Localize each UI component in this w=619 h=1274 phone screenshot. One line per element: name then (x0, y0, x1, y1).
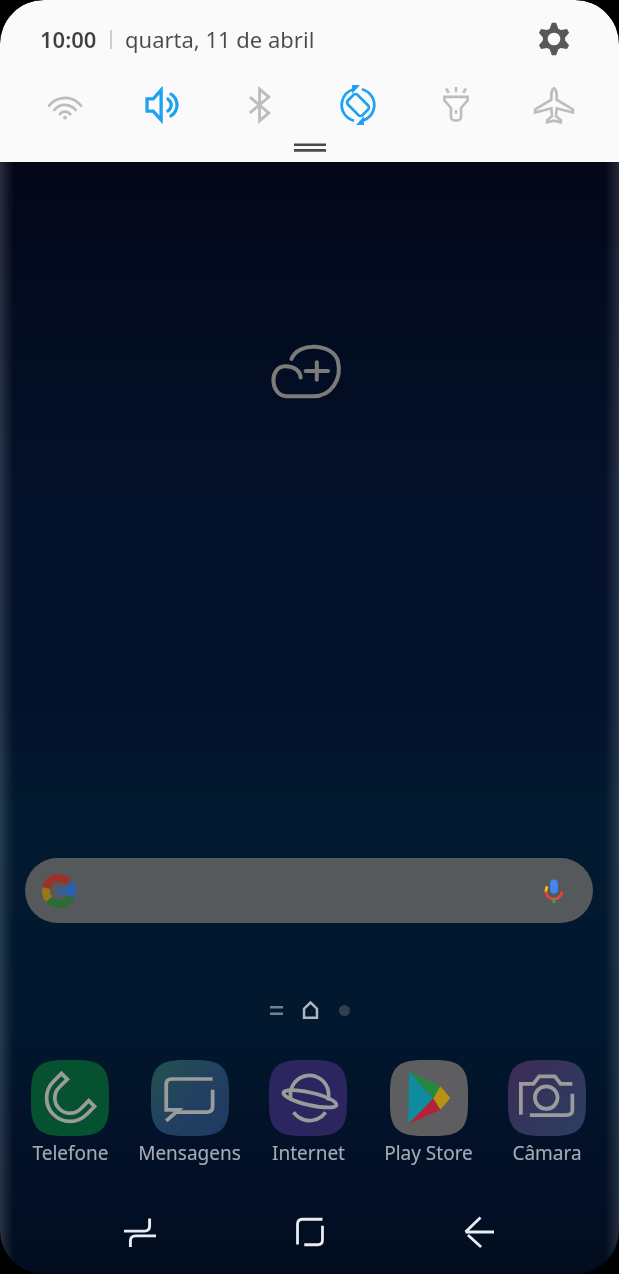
button[interactable]: Back (449, 1202, 509, 1262)
button[interactable]: Home page (298, 998, 322, 1022)
button[interactable]: Mensagens (130, 1054, 248, 1170)
staticText: Telefone (32, 1140, 109, 1166)
button[interactable]: Airplane mode (505, 76, 603, 134)
staticText: 10:00 (40, 24, 97, 54)
button[interactable]: Settings (530, 15, 578, 63)
button[interactable]: Search (25, 858, 593, 923)
button[interactable]: Auto rotate (309, 76, 407, 134)
button[interactable]: Add widget (267, 341, 350, 401)
button[interactable]: Next page (332, 998, 356, 1022)
button[interactable]: Play Store (369, 1054, 487, 1170)
staticText: Câmara (512, 1140, 582, 1166)
button[interactable]: Internet (249, 1054, 367, 1170)
staticText: Play Store (384, 1140, 473, 1166)
button[interactable]: Bluetooth (211, 76, 309, 134)
button[interactable]: Câmara (488, 1054, 606, 1170)
button[interactable]: Flashlight (407, 76, 505, 134)
button[interactable]: Feed page (264, 998, 288, 1022)
button[interactable]: Wi-Fi (16, 76, 113, 134)
staticText: quarta, 11 de abril (125, 24, 315, 54)
button[interactable]: Home (280, 1202, 340, 1262)
button[interactable]: Sound (113, 76, 211, 134)
button[interactable]: Telefone (11, 1054, 129, 1170)
staticText: Mensagens (138, 1140, 241, 1166)
button[interactable]: Recents (110, 1202, 170, 1262)
staticText: Internet (272, 1140, 345, 1166)
